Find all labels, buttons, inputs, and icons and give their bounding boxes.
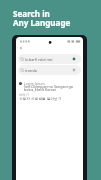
button[interactable]: Back (18, 45, 24, 51)
button[interactable]: kr.barfi rskd msi (18, 54, 81, 64)
staticText: Lorem Ipsum (24, 81, 45, 85)
staticText: transla (25, 68, 37, 73)
staticText: Search in (13, 8, 50, 19)
staticText: 번역기 (19, 93, 29, 97)
button[interactable]: Lorem Ipsum (16, 37, 83, 180)
staticText: kr.barfi rskd msi (25, 57, 53, 62)
staticText: bolus_eksift Koreai (24, 87, 56, 92)
staticText: 사용자 사용법을 알아보기 (19, 96, 62, 101)
staticText: Self-Olympian no Songani ga (24, 84, 73, 89)
staticText: Any Language (13, 17, 71, 28)
button[interactable]: transla (18, 65, 81, 75)
